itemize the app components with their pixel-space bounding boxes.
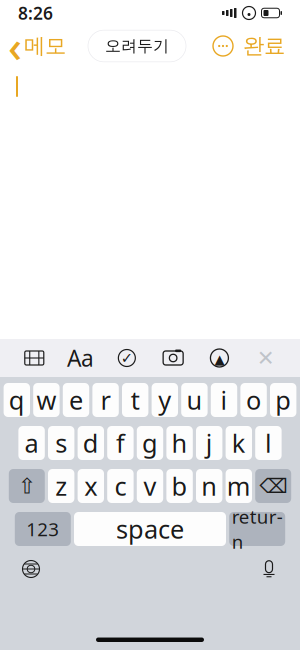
staticText: 완료 <box>243 33 285 59</box>
staticText: j <box>206 426 213 460</box>
staticText: ⌫ <box>259 475 287 497</box>
staticText: b <box>172 469 188 503</box>
staticText: z <box>55 469 67 503</box>
button[interactable]: e <box>63 383 89 417</box>
staticText: f <box>116 426 125 460</box>
staticText: k <box>232 426 246 460</box>
button[interactable]: 음성 입력 <box>252 553 286 585</box>
staticText: v <box>143 469 156 503</box>
button[interactable]: 삭제 <box>255 469 291 503</box>
button[interactable]: a <box>18 426 45 460</box>
button[interactable]: x <box>78 469 104 503</box>
button[interactable]: s <box>48 426 74 460</box>
button[interactable]: p <box>270 383 296 417</box>
button[interactable]: 오려두기 <box>88 30 186 62</box>
staticText: h <box>172 426 188 460</box>
staticText: c <box>114 469 126 503</box>
staticText: i <box>220 383 227 417</box>
button[interactable]: g <box>137 426 163 460</box>
staticText: Aa <box>67 343 94 373</box>
staticText: x <box>84 469 97 503</box>
button[interactable]: space <box>74 512 226 546</box>
button[interactable]: i <box>211 383 237 417</box>
button[interactable]: q <box>4 383 30 417</box>
button[interactable]: 키보드 전환 <box>14 553 48 585</box>
button[interactable]: z <box>48 469 74 503</box>
button[interactable]: 완료 <box>238 29 290 63</box>
button[interactable]: j <box>196 426 222 460</box>
staticText: d <box>83 426 99 460</box>
button[interactable]: l <box>255 426 282 460</box>
button[interactable]: 더 보기 <box>208 31 238 61</box>
button[interactable]: 카메라 <box>157 343 189 373</box>
staticText: space <box>116 512 184 546</box>
staticText: y <box>158 383 171 417</box>
button[interactable]: w <box>33 383 60 417</box>
staticText: 오려두기 <box>105 36 169 56</box>
button[interactable]: Shift <box>9 469 45 503</box>
staticText: n <box>201 469 217 503</box>
button[interactable]: 표 <box>18 343 50 373</box>
staticText: o <box>246 383 261 417</box>
button[interactable]: f <box>107 426 134 460</box>
staticText: p <box>275 383 291 417</box>
button[interactable]: b <box>166 469 193 503</box>
button[interactable]: 서식 <box>65 343 97 373</box>
staticText: ✕ <box>257 346 275 370</box>
button[interactable]: 닫기 <box>250 343 282 373</box>
button[interactable]: 체크리스트 <box>111 343 143 373</box>
staticText: m <box>227 469 251 503</box>
button[interactable]: y <box>152 383 178 417</box>
staticText: 메모 <box>24 33 66 59</box>
staticText: l <box>265 426 272 460</box>
staticText: u <box>186 383 202 417</box>
staticText: e <box>69 383 83 417</box>
staticText: ▲ <box>214 352 224 367</box>
button[interactable]: d <box>78 426 104 460</box>
button[interactable]: ‹ <box>0 16 66 76</box>
staticText: ‹ <box>8 18 22 74</box>
staticText: return <box>232 504 283 554</box>
button[interactable]: h <box>166 426 193 460</box>
staticText: ⇧ <box>18 474 36 498</box>
button[interactable]: r <box>92 383 119 417</box>
button[interactable]: v <box>137 469 163 503</box>
staticText: s <box>55 426 67 460</box>
staticText: t <box>131 383 140 417</box>
button[interactable]: Return <box>229 512 285 546</box>
button[interactable]: c <box>107 469 134 503</box>
button[interactable]: 마크업 <box>203 343 235 373</box>
staticText: r <box>101 383 111 417</box>
button[interactable]: m <box>226 469 252 503</box>
staticText: q <box>9 383 25 417</box>
staticText: w <box>36 383 56 417</box>
button[interactable]: 숫자 키보드 <box>15 512 71 546</box>
button[interactable]: k <box>226 426 252 460</box>
staticText: ✓ <box>121 350 133 366</box>
staticText: 8:26 <box>18 1 53 24</box>
staticText: 123 <box>26 517 59 541</box>
button[interactable]: n <box>196 469 222 503</box>
staticText: g <box>142 426 158 460</box>
button[interactable]: u <box>181 383 208 417</box>
button[interactable]: o <box>240 383 267 417</box>
staticText: a <box>25 426 39 460</box>
button[interactable]: t <box>122 383 148 417</box>
